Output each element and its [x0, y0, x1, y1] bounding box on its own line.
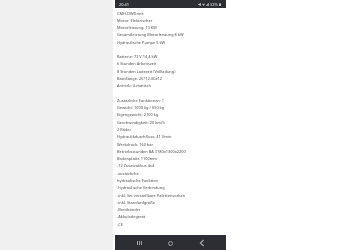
staticText: -inkl. Set verstellbare Palettenvorken: [117, 193, 186, 198]
staticText: -hydraulische Verbindung: [117, 185, 165, 190]
staticText: Hydraulikdurchfluss: 41 l/min: [117, 134, 172, 139]
staticText: Antrieb: 4-matisch: [117, 83, 151, 88]
staticText: Werkdruck: 160 bar: [117, 142, 154, 147]
staticText: Batterie: 72 V 14,4 kW: [117, 54, 158, 59]
staticText: 20:41: [119, 2, 129, 7]
staticText: -Breitbänder: [117, 207, 141, 212]
staticText: Betriebsstunden BA 3180x1300x2200: [117, 149, 186, 154]
staticText: 8 Stunden Ladezeit (Vollladung): [117, 69, 176, 74]
button[interactable]: Back: [195, 236, 209, 250]
staticText: -inkl. Standardgröße: [117, 200, 155, 205]
button[interactable]: Home: [163, 236, 177, 250]
staticText: 32%: [210, 2, 218, 7]
staticText: hydraulische Funktion: [117, 178, 159, 183]
staticText: Hydraulische Pumpe 5 kW: [117, 40, 166, 45]
staticText: Motorleistung: 13 KW: [117, 25, 157, 30]
staticText: Gewicht: 1000 kg / 650 kg: [117, 105, 165, 110]
staticText: -Akkuladegerät: [117, 214, 146, 219]
staticText: 6 Stunden Arbeitszeit: [117, 61, 157, 66]
staticText: Geschwindigkeit: 20 km/h: [117, 120, 165, 125]
staticText: Motor: Elektrischer: [117, 18, 153, 23]
staticText: Eigengewicht: 2100 kg: [117, 112, 159, 117]
staticText: -CE: [117, 222, 123, 227]
staticText: -12 Zusatzakkus 4x4: [117, 163, 155, 168]
staticText: Bodenplatte 1100mm: [117, 156, 158, 161]
staticText: Zusätzliche Funktionen: 1: [117, 98, 165, 103]
staticText: Bandlänge: 26*12.00x12: [117, 76, 162, 81]
staticText: 2 Räder: [117, 127, 132, 132]
staticText: -zusätzliche: [117, 171, 139, 176]
button[interactable]: Recent apps: [132, 236, 146, 250]
staticText: Gesamtleistung Motorleistung 8 kW: [117, 32, 184, 37]
staticText: CMH-DWDrink: [117, 11, 144, 16]
